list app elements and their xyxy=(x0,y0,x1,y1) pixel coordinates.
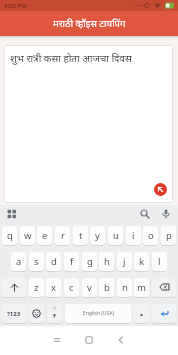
staticText: v xyxy=(87,281,92,294)
button[interactable]: h xyxy=(99,252,114,271)
staticText: English (USA) xyxy=(83,310,114,317)
button[interactable]: b xyxy=(99,278,114,297)
staticText: g xyxy=(87,255,93,268)
button[interactable] xyxy=(161,209,171,219)
staticText: m xyxy=(137,281,146,294)
button[interactable] xyxy=(134,304,149,323)
button[interactable]: j xyxy=(117,252,132,271)
staticText: मराठी व्हॉइस टायपिंग xyxy=(53,17,126,30)
button[interactable]: i xyxy=(126,226,141,245)
staticText: p xyxy=(166,229,172,242)
staticText: z xyxy=(34,281,39,294)
button[interactable]: p xyxy=(161,226,176,245)
button[interactable]: z xyxy=(29,278,44,297)
staticText: k xyxy=(139,255,145,268)
button[interactable]: t xyxy=(73,226,88,245)
button[interactable]: v xyxy=(82,278,97,297)
button[interactable]: शुभ रात्री कसा होता आजचा दिवस xyxy=(4,45,173,203)
staticText: f xyxy=(70,255,74,268)
staticText: o xyxy=(148,229,154,242)
button[interactable]: g xyxy=(82,252,97,271)
staticText: t xyxy=(79,229,83,242)
button[interactable]: s xyxy=(29,252,44,271)
staticText: x xyxy=(51,281,57,294)
button[interactable] xyxy=(2,278,26,297)
button[interactable] xyxy=(29,304,44,323)
staticText: u xyxy=(113,229,119,242)
button[interactable]: m xyxy=(134,278,149,297)
staticText: e xyxy=(42,229,48,242)
button[interactable]: c xyxy=(64,278,79,297)
staticText: y xyxy=(95,229,100,242)
button[interactable]: n xyxy=(117,278,132,297)
button[interactable]: u xyxy=(108,226,123,245)
button[interactable]: r xyxy=(55,226,70,245)
staticText: l xyxy=(158,255,161,268)
staticText: w xyxy=(24,229,32,242)
button[interactable] xyxy=(140,209,150,219)
button[interactable]: e xyxy=(37,226,52,245)
button[interactable]: f xyxy=(64,252,79,271)
staticText: j xyxy=(123,255,126,268)
button[interactable]: English (USA) xyxy=(65,304,131,323)
button[interactable] xyxy=(53,336,61,344)
button[interactable]: o xyxy=(143,226,158,245)
staticText: r xyxy=(61,229,65,242)
staticText: शुभ रात्री कसा होता आजचा दिवस xyxy=(10,51,132,65)
staticText: b xyxy=(104,281,110,294)
button[interactable]: l xyxy=(152,252,167,271)
button[interactable] xyxy=(152,278,176,297)
staticText: ?123 xyxy=(7,310,21,318)
button[interactable] xyxy=(7,209,17,219)
button[interactable] xyxy=(85,336,93,344)
staticText: 4:52 PM xyxy=(4,2,27,10)
button[interactable] xyxy=(47,304,62,323)
staticText: n xyxy=(122,281,128,294)
button[interactable]: ?123 xyxy=(2,304,26,323)
staticText: c xyxy=(69,281,74,294)
button[interactable]: w xyxy=(20,226,35,245)
staticText: h xyxy=(104,255,110,268)
staticText: s xyxy=(34,255,39,268)
button[interactable] xyxy=(152,304,176,323)
button[interactable]: a xyxy=(11,252,26,271)
button[interactable] xyxy=(154,183,167,196)
button[interactable] xyxy=(117,336,125,344)
button[interactable]: q xyxy=(2,226,17,245)
staticText: i xyxy=(132,229,135,242)
staticText: d xyxy=(51,255,57,268)
button[interactable]: y xyxy=(90,226,105,245)
button[interactable]: x xyxy=(46,278,61,297)
button[interactable]: d xyxy=(46,252,61,271)
staticText: a xyxy=(16,255,22,268)
staticText: q xyxy=(7,229,13,242)
button[interactable]: k xyxy=(134,252,149,271)
